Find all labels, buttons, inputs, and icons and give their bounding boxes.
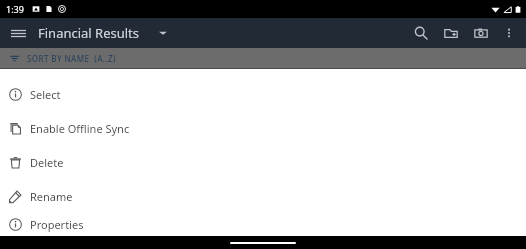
button[interactable]: Properties xyxy=(0,213,526,236)
staticText: Enable Offline Sync xyxy=(30,121,130,136)
staticText: Delete xyxy=(30,155,64,170)
button[interactable]: Enable Offline Sync xyxy=(0,111,526,145)
button[interactable]: New folder xyxy=(436,18,466,48)
button[interactable]: More options xyxy=(496,20,522,46)
staticText: Properties xyxy=(30,217,84,232)
button[interactable]: Camera xyxy=(466,18,496,48)
staticText: Financial Results xyxy=(38,24,140,42)
button[interactable]: Change folder xyxy=(152,22,174,44)
button[interactable]: Open navigation drawer xyxy=(4,19,32,47)
staticText: Rename xyxy=(30,189,73,204)
staticText: SORT BY NAME (A..Z) xyxy=(27,53,116,64)
staticText: 1:39 xyxy=(6,3,24,15)
button[interactable]: SORT BY NAME (A..Z) xyxy=(0,48,526,68)
button[interactable]: Delete xyxy=(0,145,526,179)
button[interactable]: Rename xyxy=(0,179,526,213)
staticText: Select xyxy=(30,87,61,102)
button[interactable]: Select xyxy=(0,77,526,111)
button[interactable]: Search xyxy=(406,18,436,48)
